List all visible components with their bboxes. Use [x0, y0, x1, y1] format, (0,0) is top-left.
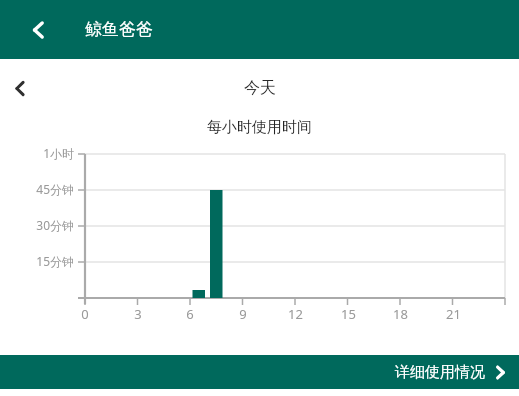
staticText: 0: [81, 305, 89, 323]
staticText: 45分钟: [36, 181, 74, 197]
staticText: 15: [341, 305, 356, 323]
button[interactable]: 详细使用情况: [0, 355, 519, 389]
staticText: 9: [239, 305, 247, 323]
staticText: 18: [393, 305, 408, 323]
staticText: 12: [288, 305, 303, 323]
staticText: 21: [446, 305, 461, 323]
staticText: 15分钟: [36, 253, 74, 269]
button[interactable]: 返回: [3, 71, 37, 105]
staticText: 1小时: [43, 145, 74, 161]
staticText: 30分钟: [36, 217, 74, 233]
staticText: 每小时使用时间: [207, 118, 312, 137]
staticText: 今天: [244, 78, 276, 98]
staticText: 鲸鱼爸爸: [85, 19, 153, 40]
staticText: 3: [134, 305, 142, 323]
staticText: 6: [186, 305, 194, 323]
staticText: 详细使用情况: [395, 363, 485, 382]
button[interactable]: 返回: [23, 14, 55, 46]
